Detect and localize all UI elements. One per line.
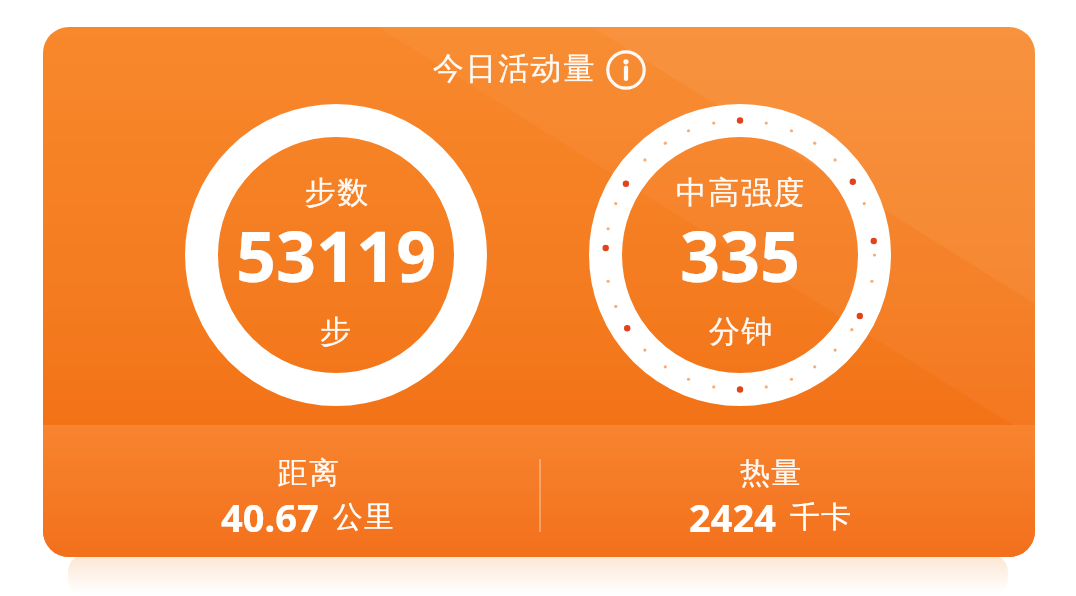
staticText: 热量 — [739, 454, 802, 492]
staticText: 335 — [680, 207, 801, 302]
staticText: 分钟 — [708, 312, 773, 351]
staticText: 千卡 — [789, 498, 852, 536]
staticText: 步数 — [304, 173, 369, 212]
staticText: 今日活动量 — [432, 49, 595, 88]
staticText: 53119 — [236, 207, 437, 302]
staticText: 2424 — [689, 491, 776, 543]
staticText: 距离 — [277, 454, 340, 492]
staticText: 中高强度 — [675, 173, 805, 212]
staticText: 公里 — [332, 498, 395, 536]
button[interactable]: 今日活动量 — [432, 48, 646, 88]
staticText: 40.67 — [221, 491, 319, 543]
staticText: 步 — [320, 312, 353, 351]
button[interactable]: 今日活动量 — [43, 27, 1035, 557]
